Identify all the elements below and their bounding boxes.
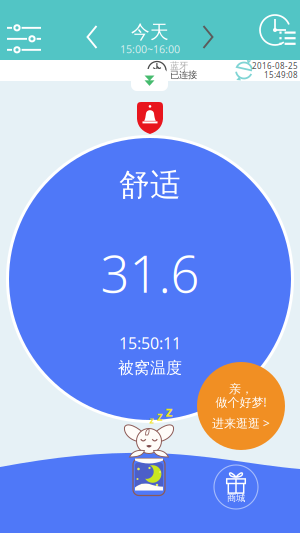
button[interactable]: Sync data: [131, 69, 168, 91]
button[interactable]: Settings: [0, 12, 52, 64]
button[interactable]: Next day: [194, 16, 224, 60]
staticText: 进来逛逛 >: [212, 415, 270, 431]
staticText: 蓝牙: [170, 60, 188, 72]
staticText: 今天: [131, 20, 169, 43]
button[interactable]: Promotion: sweet dreams, browse the shop: [197, 362, 285, 450]
staticText: z: [157, 408, 163, 424]
staticText: 15:50:11: [119, 332, 181, 354]
button[interactable]: Refresh: [234, 60, 298, 81]
button[interactable]: Bluetooth connected: [147, 60, 201, 81]
button[interactable]: Previous day: [78, 16, 108, 60]
staticText: 31.6: [100, 239, 199, 307]
staticText: 已连接: [170, 69, 197, 81]
staticText: 商城: [227, 492, 245, 504]
staticText: 2016-08-25: [252, 61, 298, 71]
staticText: 被窝温度: [118, 358, 182, 378]
button[interactable]: Shop: [214, 465, 258, 509]
staticText: 15:00~16:00: [120, 42, 180, 56]
staticText: 舒适: [119, 166, 181, 204]
staticText: 做个好梦!: [215, 394, 266, 410]
staticText: 15:49:08: [264, 70, 298, 80]
button[interactable]: History: [247, 4, 300, 56]
staticText: 亲，: [229, 382, 253, 396]
staticText: z: [165, 401, 172, 421]
staticText: z: [149, 414, 154, 426]
